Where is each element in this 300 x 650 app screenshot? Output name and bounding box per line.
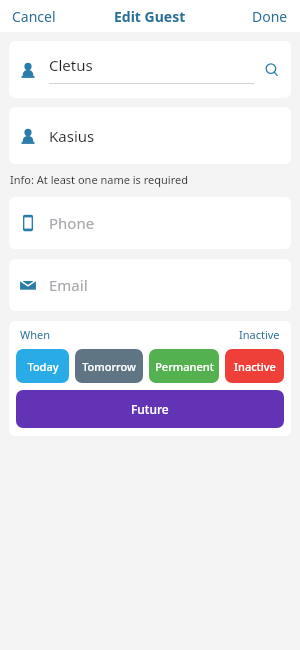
staticText: Inactive: [234, 359, 276, 374]
button[interactable]: Inactive: [225, 349, 284, 383]
button[interactable]: Phone: [9, 197, 291, 249]
button[interactable]: Kasius: [9, 107, 291, 164]
staticText: Cletus: [49, 55, 93, 75]
staticText: Tomorrow: [82, 359, 136, 374]
staticText: Today: [27, 359, 59, 374]
staticText: Done: [252, 7, 288, 26]
button[interactable]: Search: [262, 60, 281, 79]
button[interactable]: Cletus: [9, 41, 291, 98]
button[interactable]: Cancel: [0, 1, 68, 32]
staticText: Edit Guest: [114, 7, 186, 26]
staticText: Permanent: [155, 359, 214, 374]
staticText: Info: At least one name is required: [10, 172, 188, 187]
staticText: Future: [131, 401, 169, 417]
button[interactable]: Done: [240, 1, 300, 32]
button[interactable]: Future: [16, 390, 284, 428]
staticText: Phone: [49, 213, 95, 233]
button[interactable]: Permanent: [149, 349, 219, 383]
staticText: When: [20, 327, 51, 342]
button[interactable]: Today: [16, 349, 69, 383]
staticText: Cancel: [12, 7, 56, 26]
staticText: Email: [49, 275, 88, 295]
button[interactable]: Email: [9, 259, 291, 311]
button[interactable]: Tomorrow: [75, 349, 143, 383]
staticText: Kasius: [49, 126, 95, 146]
staticText: Inactive: [239, 327, 280, 342]
